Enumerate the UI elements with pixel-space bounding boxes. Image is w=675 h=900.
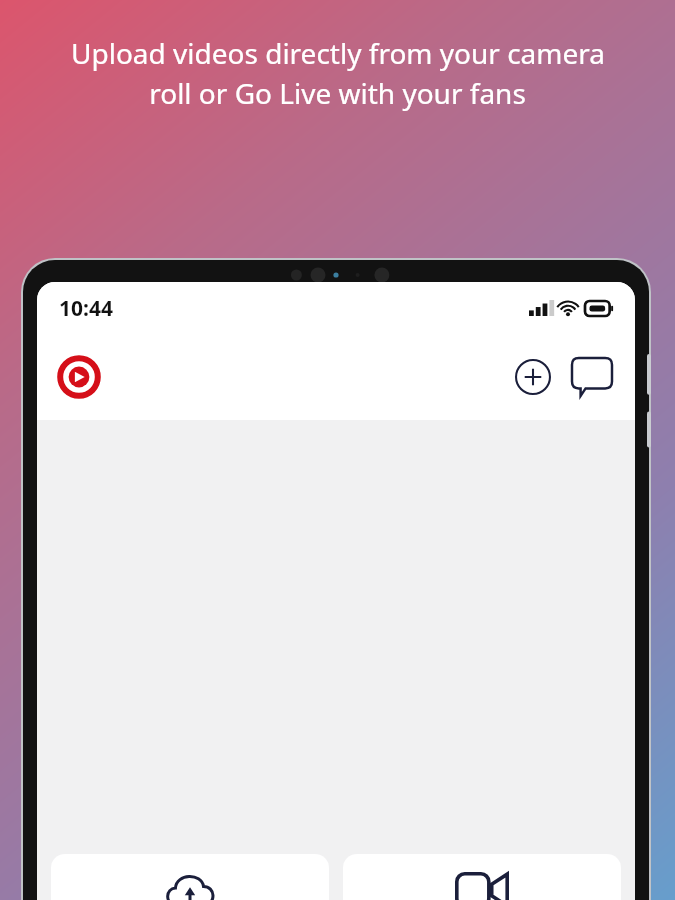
button[interactable]: Upload from camera roll <box>51 854 329 900</box>
button[interactable]: Messages <box>567 352 617 402</box>
staticText: roll or Go Live with your fans <box>149 74 526 112</box>
button[interactable]: Create <box>509 353 557 401</box>
button[interactable]: Go Live <box>343 854 621 900</box>
staticText: 10:44 <box>59 294 113 323</box>
button[interactable]: Home <box>55 353 103 401</box>
staticText: Upload videos directly from your camera <box>71 34 605 72</box>
